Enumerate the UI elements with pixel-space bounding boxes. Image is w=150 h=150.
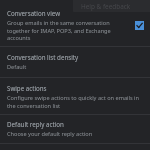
staticText: Group emails in the same conversation to… xyxy=(7,19,129,41)
button[interactable]: Conversation view xyxy=(0,9,150,45)
staticText: Choose your default reply action xyxy=(7,130,93,138)
staticText: Default reply action xyxy=(7,120,64,128)
staticText: Default xyxy=(7,63,27,71)
staticText: Conversation view xyxy=(7,9,61,17)
staticText: Help & feedback xyxy=(81,2,131,11)
button[interactable]: Swipe actions xyxy=(0,78,150,114)
button[interactable]: Default reply action xyxy=(0,115,150,143)
button[interactable]: Toggle setting xyxy=(135,21,144,30)
button[interactable]: Conversation list density xyxy=(0,47,150,77)
button[interactable]: Help & feedback xyxy=(73,0,150,12)
staticText: Swipe actions xyxy=(7,84,47,92)
staticText: Conversation list density xyxy=(7,53,79,61)
staticText: Configure swipe actions to quickly act o… xyxy=(7,94,144,109)
